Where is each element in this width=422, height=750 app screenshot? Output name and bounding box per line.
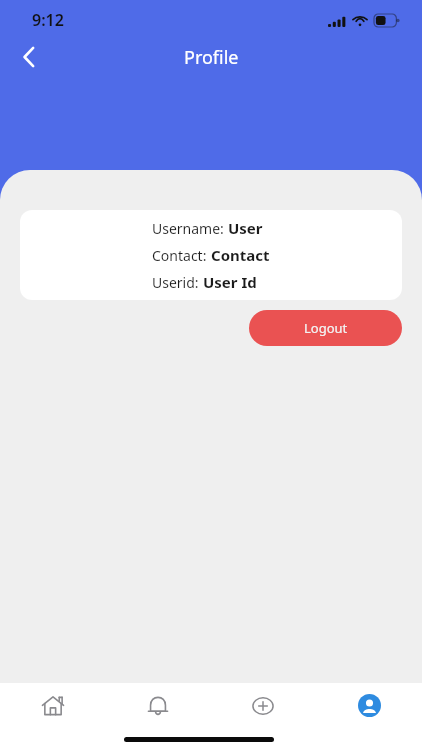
staticText: Profile xyxy=(184,45,239,70)
staticText: Username: xyxy=(152,219,228,238)
staticText: User xyxy=(228,218,263,238)
staticText: Userid: xyxy=(152,273,203,292)
staticText: Logout xyxy=(304,319,348,337)
button[interactable]: Back xyxy=(12,40,46,74)
button[interactable]: Username: xyxy=(20,210,402,300)
button[interactable]: Profile xyxy=(316,683,422,728)
staticText: Contact: xyxy=(152,246,211,265)
staticText: User Id xyxy=(203,272,257,292)
button[interactable]: Add xyxy=(210,683,316,728)
staticText: 9:12 xyxy=(32,9,64,31)
button[interactable]: Home xyxy=(0,683,105,728)
staticText: Contact xyxy=(211,245,270,265)
button[interactable]: Logout xyxy=(249,310,402,346)
button[interactable]: Notifications xyxy=(105,683,210,728)
